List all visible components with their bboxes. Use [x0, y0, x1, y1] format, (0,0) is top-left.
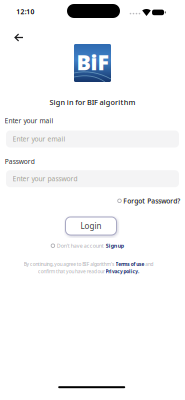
staticText: Enter your email [12, 135, 65, 143]
button[interactable]: Back [11, 30, 27, 45]
button[interactable]: Forgot Password? [118, 196, 180, 205]
staticText: Sign up [106, 242, 124, 249]
button[interactable]: Login [65, 217, 116, 235]
staticText: Login [80, 221, 101, 231]
textField[interactable]: Enter your email [12, 135, 179, 143]
staticText: Password [5, 157, 35, 166]
button[interactable]: Sign up [106, 242, 124, 249]
textField[interactable]: Enter your password [12, 174, 179, 183]
staticText: Enter your mail [4, 116, 53, 125]
staticText: and [150, 260, 160, 267]
staticText: Terms of use [118, 260, 150, 267]
staticText: Sign in for BIF algorithm [37, 96, 147, 108]
staticText: BiF [76, 48, 108, 76]
staticText: By continuing, you agree to BIF algorith… [16, 260, 118, 267]
staticText: Enter your password [12, 174, 77, 183]
staticText: 12:10 [14, 6, 36, 17]
staticText: confirm that you have read our [32, 268, 107, 275]
button[interactable]: Privacy policy. [107, 268, 144, 275]
staticText: Privacy policy. [107, 268, 144, 275]
staticText: Forgot Password? [123, 196, 180, 205]
staticText: Don't have account [57, 242, 104, 249]
button[interactable]: Terms of use [118, 260, 150, 267]
